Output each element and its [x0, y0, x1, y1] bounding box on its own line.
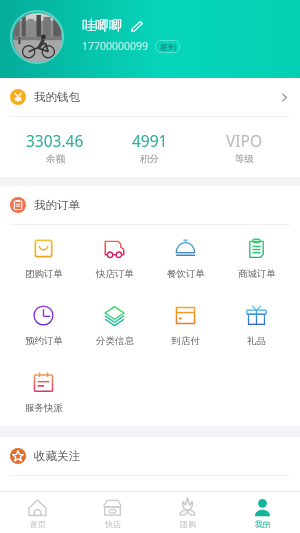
staticText: 商城订单	[238, 268, 276, 280]
staticText: 收藏关注	[34, 449, 80, 463]
staticText: 团购订单	[25, 268, 63, 280]
button[interactable]: Edit nickname	[130, 19, 143, 32]
staticText: 余额	[46, 153, 65, 165]
staticText: 积分	[140, 153, 159, 165]
staticText: 签到	[160, 42, 176, 52]
button[interactable]: Profile photo	[13, 13, 62, 62]
button[interactable]: 快店订单	[79, 225, 150, 292]
staticText: 我的	[255, 519, 271, 529]
staticText: 预约订单	[25, 335, 63, 347]
button[interactable]: 团购	[150, 492, 225, 533]
staticText: 团购	[180, 519, 196, 529]
button[interactable]: 分类信息	[79, 292, 150, 359]
staticText: 3303.46	[26, 130, 84, 151]
button[interactable]: 礼品	[221, 292, 292, 359]
staticText: 到店付	[171, 335, 200, 347]
button[interactable]: 首页	[0, 492, 75, 533]
button[interactable]: 我的	[225, 492, 300, 533]
button[interactable]: 收藏关注	[0, 437, 300, 475]
button[interactable]: 快店	[75, 492, 150, 533]
staticText: 礼品	[247, 335, 266, 347]
staticText: 4991	[132, 130, 168, 151]
staticText: 快店订单	[96, 268, 134, 280]
staticText: 服务快派	[25, 402, 63, 414]
button[interactable]: VIPO	[197, 117, 292, 177]
button[interactable]: 团购订单	[8, 225, 79, 292]
button[interactable]: 服务快派	[8, 359, 79, 426]
button[interactable]: 预约订单	[8, 292, 79, 359]
button[interactable]: 餐饮订单	[150, 225, 221, 292]
staticText: VIPO	[226, 130, 263, 151]
staticText: 我的订单	[34, 198, 80, 212]
staticText: 17700000099	[82, 39, 149, 53]
button[interactable]: 我的订单	[0, 186, 300, 224]
staticText: 快店	[105, 519, 121, 529]
button[interactable]: 4991	[102, 117, 197, 177]
staticText: 首页	[30, 519, 46, 529]
button[interactable]: 到店付	[150, 292, 221, 359]
staticText: 我的钱包	[34, 90, 80, 104]
button[interactable]: 我的钱包	[0, 78, 300, 116]
button[interactable]: 商城订单	[221, 225, 292, 292]
staticText: 哇唧唧	[82, 17, 123, 34]
staticText: 餐饮订单	[167, 268, 205, 280]
staticText: 等级	[235, 153, 254, 165]
button[interactable]: 签到	[155, 40, 180, 53]
staticText: 分类信息	[96, 335, 134, 347]
button[interactable]: 3303.46	[8, 117, 102, 177]
